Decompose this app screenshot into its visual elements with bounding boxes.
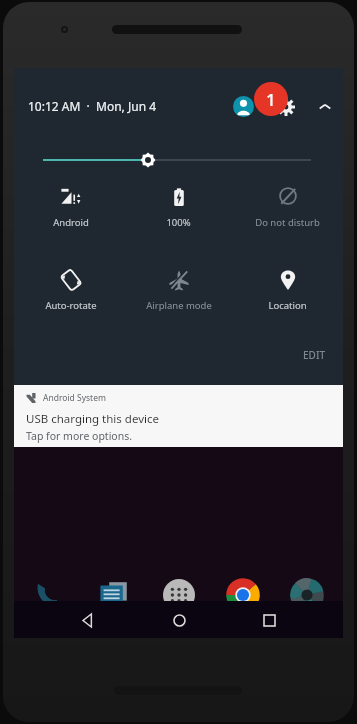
button[interactable]: Airplane mode (126, 264, 231, 316)
button[interactable]: All apps (159, 575, 199, 615)
button[interactable]: Home (162, 603, 196, 637)
staticText: EDIT (303, 348, 326, 362)
button[interactable]: Auto-rotate (18, 264, 123, 316)
button[interactable]: Messages (94, 575, 134, 615)
button[interactable]: Settings (276, 97, 296, 117)
staticText: Airplane mode (146, 299, 212, 312)
button[interactable]: Back (71, 603, 105, 637)
button[interactable]: Do not disturb (235, 181, 340, 233)
button[interactable]: Collapse (314, 96, 336, 118)
button[interactable]: EDIT (297, 344, 332, 366)
button[interactable]: Camera (287, 575, 327, 615)
staticText: 1 (266, 88, 276, 111)
button[interactable]: Phone (30, 575, 70, 615)
button[interactable]: Brightness (14, 148, 343, 172)
staticText: Android (53, 216, 89, 229)
staticText: USB charging this device (26, 411, 159, 427)
staticText: Tap for more options. (26, 429, 133, 443)
button[interactable]: Location (235, 264, 340, 316)
staticText: Auto-rotate (45, 299, 97, 312)
button[interactable]: 100% (126, 181, 231, 233)
staticText: Do not disturb (255, 216, 320, 229)
button[interactable]: User (233, 96, 254, 117)
button[interactable]: Android (18, 181, 123, 233)
staticText: Android System (43, 392, 106, 404)
staticText: Location (268, 299, 307, 312)
staticText: 10:12 AM · Mon, Jun 4 (28, 98, 157, 114)
button[interactable]: Chrome (223, 575, 263, 615)
staticText: 100% (166, 216, 191, 229)
button[interactable]: Recents (252, 603, 286, 637)
button[interactable]: Android System (14, 385, 343, 447)
